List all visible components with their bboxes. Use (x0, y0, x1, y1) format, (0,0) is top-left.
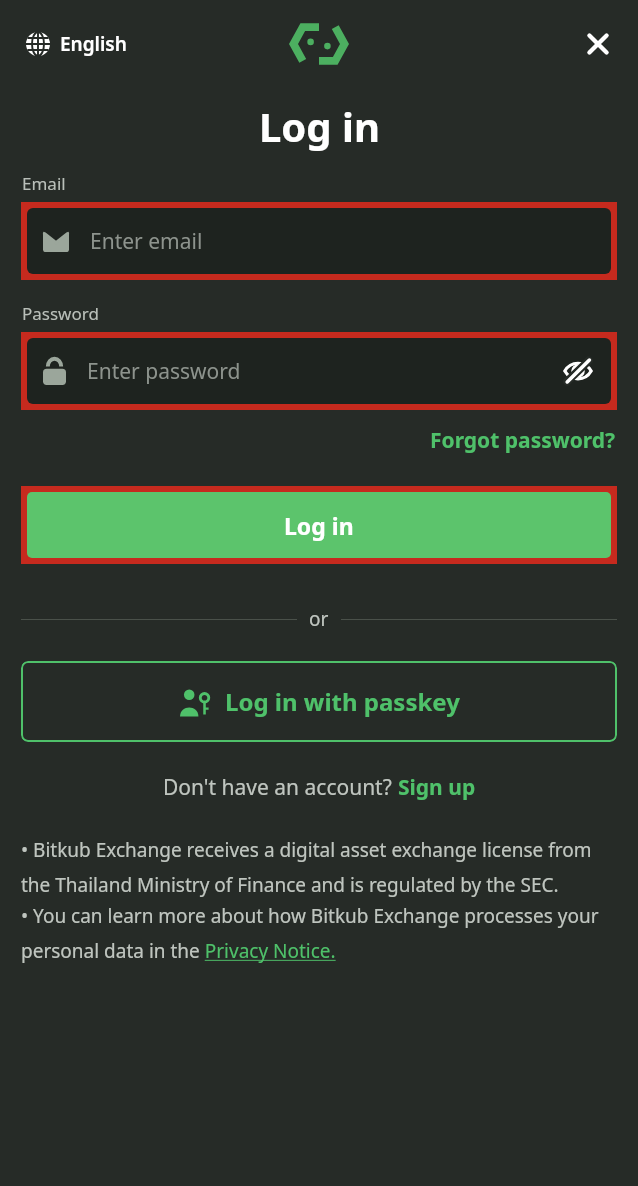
button[interactable]: Forgot password? (426, 423, 620, 458)
staticText: Don't have an account? (163, 773, 398, 802)
button[interactable]: Log in (27, 492, 611, 558)
button[interactable]: English (22, 25, 131, 63)
staticText: Email (22, 172, 66, 195)
staticText: or (309, 606, 329, 632)
staticText: Log in (284, 510, 354, 541)
button[interactable]: Show password (557, 350, 599, 392)
staticText: English (60, 31, 127, 57)
button[interactable]: Close (576, 22, 620, 66)
staticText: Enter password (87, 357, 557, 386)
button[interactable]: Enter email (27, 208, 611, 274)
staticText: Log in (259, 99, 380, 153)
button[interactable]: Log in with passkey (21, 661, 617, 742)
button[interactable]: Sign up (398, 773, 476, 802)
staticText: Log in with passkey (225, 685, 460, 718)
staticText: Enter email (90, 227, 203, 256)
staticText: • You can learn more about how Bitkub Ex… (21, 903, 617, 964)
staticText: • Bitkub Exchange receives a digital ass… (21, 837, 617, 898)
button[interactable]: Enter password (27, 338, 611, 404)
staticText: Password (22, 302, 99, 325)
staticText: Forgot password? (430, 426, 616, 455)
staticText: Sign up (398, 773, 476, 802)
